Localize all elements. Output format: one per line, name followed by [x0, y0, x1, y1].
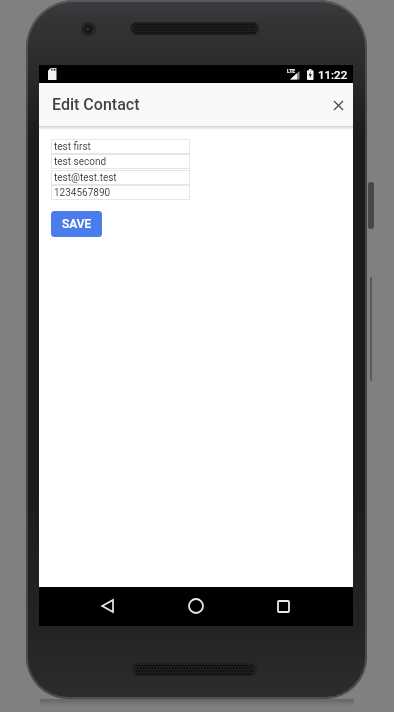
button[interactable]: test second	[51, 154, 190, 169]
button[interactable]	[93, 592, 121, 620]
button[interactable]: test first	[51, 139, 190, 154]
staticText: Edit Contact	[52, 95, 140, 114]
staticText: test@test.test	[54, 172, 117, 184]
button[interactable]: 1234567890	[51, 185, 190, 200]
staticText: LTE	[287, 68, 296, 74]
button[interactable]: test@test.test	[51, 170, 190, 185]
button[interactable]	[182, 592, 210, 620]
button[interactable]	[327, 94, 349, 116]
staticText: 1234567890	[54, 187, 111, 199]
staticText: SAVE	[62, 217, 92, 231]
staticText: 11:22	[318, 68, 348, 81]
staticText: test first	[54, 141, 91, 153]
staticText: test second	[54, 156, 107, 168]
button[interactable]: SAVE	[51, 211, 102, 237]
button[interactable]	[269, 592, 297, 620]
